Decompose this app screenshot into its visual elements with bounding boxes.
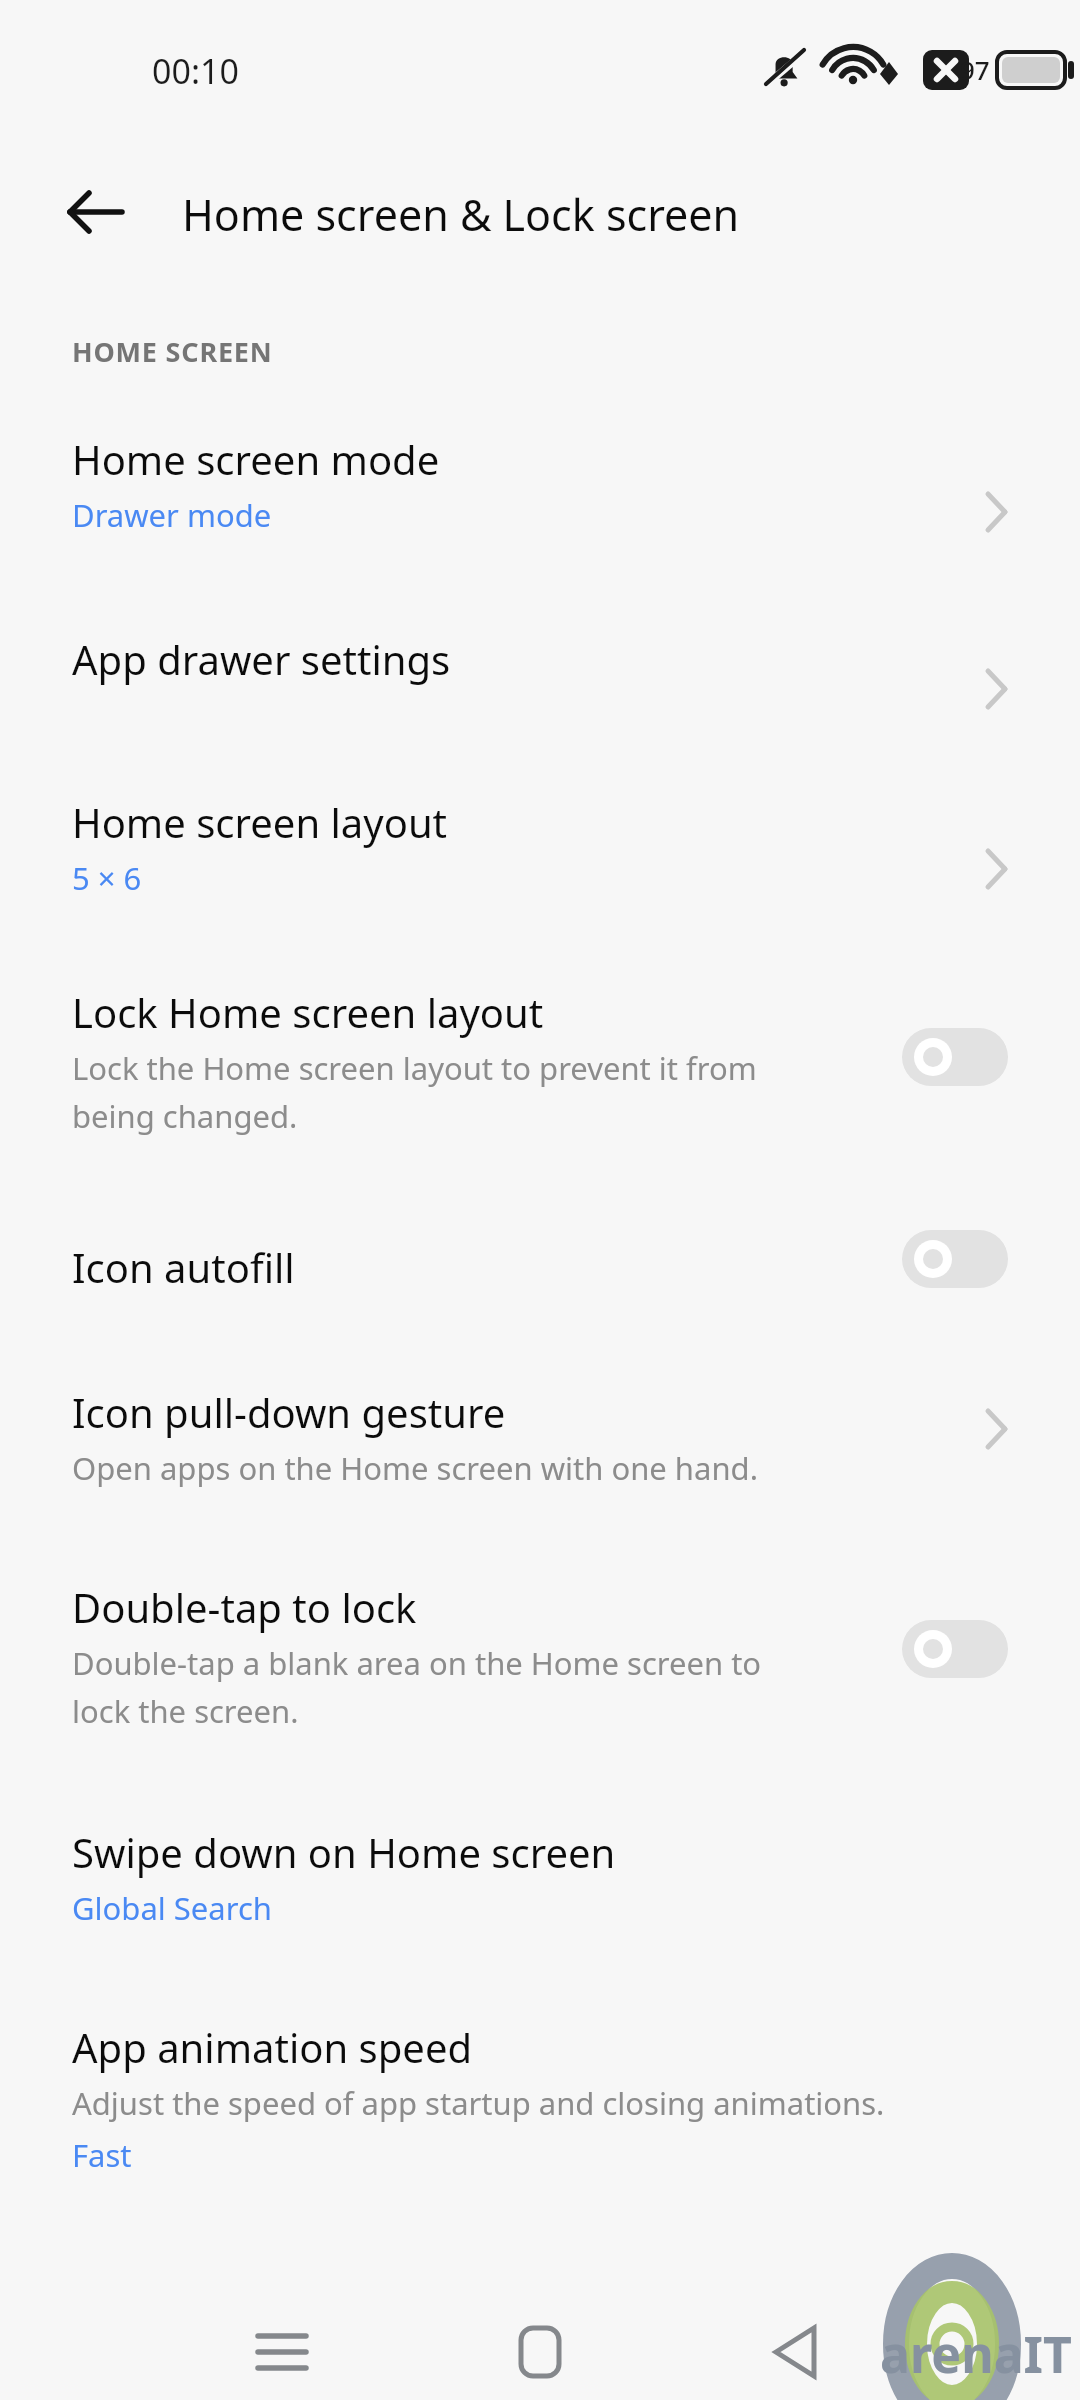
button[interactable] [0,606,1080,678]
button[interactable]: Recent apps [228,2298,336,2400]
staticText: Icon pull-down gesture [72,1385,506,1439]
button[interactable]: Toggle Icon autofill [902,1230,1008,1288]
staticText: Fast [72,2134,132,2176]
button[interactable]: Back [744,2298,852,2400]
staticText: Double-tap to lock [72,1580,417,1634]
button[interactable]: Toggle Double-tap to lock [902,1620,1008,1678]
staticText: Open apps on the Home screen with one ha… [72,1447,758,1489]
staticText: Swipe down on Home screen [72,1825,616,1879]
staticText: Icon autofill [72,1240,295,1294]
button[interactable] [0,1799,1080,1925]
staticText: Drawer mode [72,494,272,536]
button[interactable]: Back [56,172,136,252]
button[interactable] [0,1359,1080,1483]
staticText: arenaIT [880,2320,1072,2388]
button[interactable]: Toggle Lock Home screen layout [902,1028,1008,1086]
button[interactable]: Home [486,2298,594,2400]
staticText: App drawer settings [72,632,451,686]
button[interactable] [0,406,1080,532]
staticText: Double-tap a blank area on the Home scre… [72,1642,762,1732]
button[interactable] [0,959,1080,1127]
staticText: Home screen layout [72,795,448,849]
staticText: HOME SCREEN [72,333,273,370]
button[interactable] [0,769,1080,895]
staticText: 5 × 6 [72,857,142,899]
button[interactable] [0,1994,1080,2172]
staticText: Lock the Home screen layout to prevent i… [72,1047,757,1137]
staticText: Home screen mode [72,432,440,486]
staticText: Home screen & Lock screen [182,185,740,244]
staticText: Adjust the speed of app startup and clos… [72,2082,885,2124]
button[interactable] [0,1214,1080,1286]
staticText: Lock Home screen layout [72,985,544,1039]
staticText: Global Search [72,1887,272,1929]
button[interactable] [0,1554,1080,1722]
staticText: 97 [960,52,990,87]
staticText: App animation speed [72,2020,473,2074]
staticText: 00:10 [152,48,239,94]
